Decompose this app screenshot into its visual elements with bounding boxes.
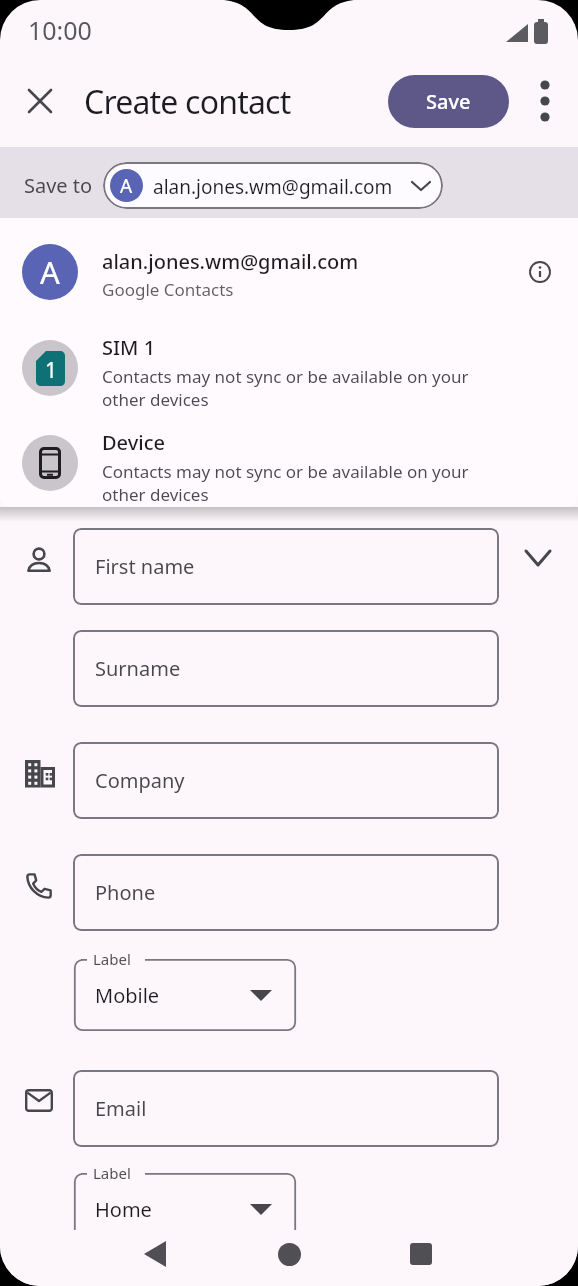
- staticText: Mobile: [95, 982, 160, 1009]
- staticText: alan.jones.wm@gmail.com: [153, 174, 393, 200]
- staticText: SIM 1: [102, 334, 156, 361]
- button[interactable]: Save: [388, 75, 509, 128]
- staticText: Contacts may not sync or be available on…: [102, 460, 469, 483]
- staticText: A: [120, 173, 133, 199]
- staticText: Label: [93, 949, 131, 969]
- staticText: 10:00: [28, 13, 92, 47]
- staticText: Phone: [95, 879, 156, 906]
- button[interactable]: [267, 1232, 311, 1276]
- staticText: Save to: [24, 172, 93, 199]
- button[interactable]: 1: [0, 330, 578, 425]
- button[interactable]: [399, 1232, 443, 1276]
- staticText: Create contact: [84, 80, 291, 124]
- button[interactable]: Company: [73, 742, 499, 819]
- staticText: other devices: [102, 483, 209, 506]
- button[interactable]: Label: [73, 1172, 297, 1246]
- staticText: Google Contacts: [102, 278, 234, 301]
- staticText: 1: [45, 356, 58, 385]
- button[interactable]: Phone: [73, 854, 499, 931]
- staticText: Contacts may not sync or be available on…: [102, 365, 469, 388]
- staticText: alan.jones.wm@gmail.com: [102, 248, 359, 275]
- button[interactable]: Device: [0, 425, 578, 520]
- staticText: Company: [95, 767, 185, 794]
- button[interactable]: First name: [73, 528, 499, 605]
- staticText: A: [40, 251, 60, 293]
- staticText: other devices: [102, 388, 209, 411]
- staticText: Surname: [95, 655, 181, 682]
- button[interactable]: A: [0, 230, 578, 320]
- staticText: Home: [95, 1196, 152, 1223]
- staticText: Label: [93, 1163, 131, 1183]
- button[interactable]: Label: [73, 958, 297, 1032]
- button[interactable]: Email: [73, 1070, 499, 1147]
- staticText: Device: [102, 429, 165, 456]
- button[interactable]: A: [103, 162, 443, 209]
- staticText: Email: [95, 1095, 147, 1122]
- button[interactable]: [18, 79, 62, 123]
- staticText: Save: [426, 88, 471, 115]
- button[interactable]: Surname: [73, 630, 499, 707]
- button[interactable]: [133, 1232, 177, 1276]
- button[interactable]: [523, 79, 567, 123]
- button[interactable]: [516, 536, 560, 580]
- staticText: First name: [95, 553, 195, 580]
